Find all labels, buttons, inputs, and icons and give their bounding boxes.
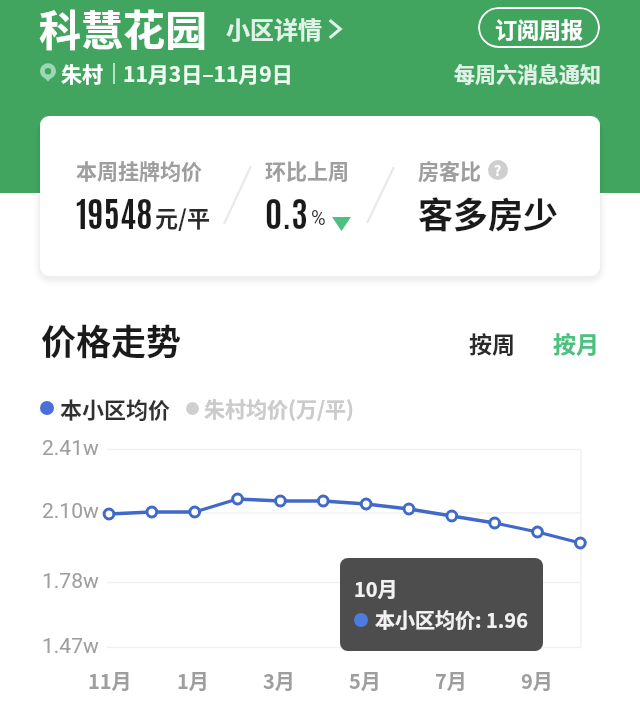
staticText: 7月: [435, 666, 467, 695]
staticText: 3月: [263, 666, 295, 695]
staticText: 小区详情: [226, 11, 322, 46]
staticText: 科慧花园: [39, 0, 208, 58]
staticText: ?: [494, 160, 502, 180]
staticText: 5月: [349, 666, 381, 695]
staticText: 本小区均价: 1.96: [375, 605, 528, 634]
staticText: 本周挂牌均价: [76, 155, 202, 185]
button[interactable]: 小区详情: [226, 11, 342, 46]
staticText: 环比上周: [265, 155, 349, 185]
staticText: 0.3: [265, 189, 308, 234]
staticText: 11月3日–11月9日: [123, 58, 293, 88]
staticText: 房客比: [418, 155, 481, 185]
staticText: 每周六消息通知: [454, 58, 601, 88]
staticText: 1月: [177, 666, 209, 695]
staticText: 订阅周报: [495, 12, 584, 44]
staticText: 10月: [354, 574, 398, 603]
staticText: 2.41w: [42, 436, 99, 461]
staticText: 元/平: [155, 200, 210, 233]
staticText: 9月: [521, 666, 553, 695]
button[interactable]: 按周: [461, 318, 523, 367]
staticText: 19548: [76, 189, 153, 234]
staticText: 价格走势: [41, 314, 182, 365]
staticText: 2.10w: [42, 499, 99, 524]
other: 位置: [40, 64, 56, 82]
staticText: 朱村均价(万/平): [204, 393, 355, 423]
staticText: 按周: [469, 326, 515, 359]
button[interactable]: 订阅周报: [478, 7, 600, 48]
button[interactable]: 说明: [488, 160, 508, 180]
staticText: 11月: [88, 666, 132, 695]
staticText: 按月: [553, 326, 599, 359]
staticText: %: [311, 206, 326, 229]
button[interactable]: 按月: [545, 318, 607, 367]
staticText: 客多房少: [418, 187, 559, 238]
staticText: 本小区均价: [60, 392, 171, 424]
staticText: 朱村: [61, 58, 103, 88]
staticText: 1.78w: [42, 569, 99, 594]
staticText: 1.47w: [42, 634, 99, 659]
